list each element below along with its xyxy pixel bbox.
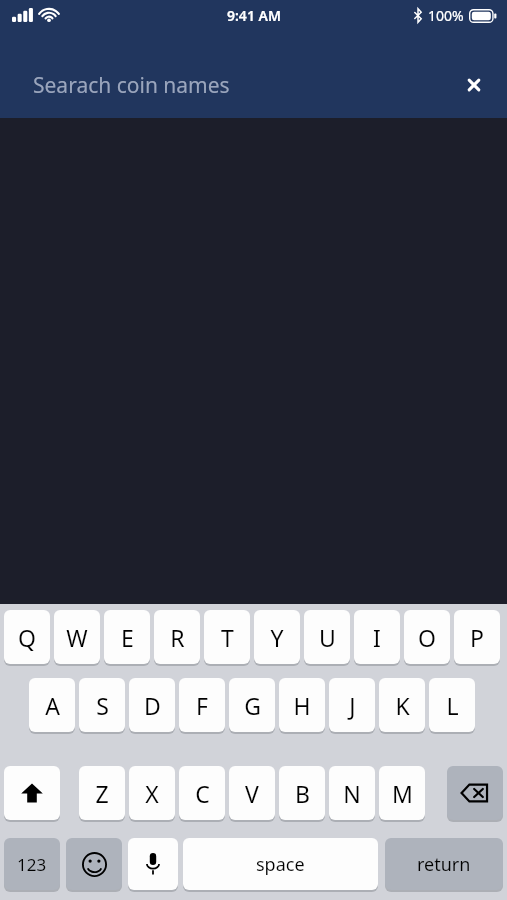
staticText: V: [245, 778, 259, 809]
button[interactable]: D: [129, 678, 175, 732]
staticText: N: [343, 778, 361, 809]
staticText: F: [196, 690, 208, 721]
button[interactable]: P: [454, 610, 500, 664]
button[interactable]: A: [29, 678, 75, 732]
staticText: 123: [17, 853, 47, 876]
staticText: space: [256, 852, 305, 877]
staticText: K: [395, 690, 410, 721]
staticText: 100%: [428, 6, 464, 25]
button[interactable]: X: [129, 766, 175, 820]
button[interactable]: N: [329, 766, 375, 820]
staticText: O: [418, 622, 436, 653]
staticText: return: [417, 852, 471, 877]
button[interactable]: L: [429, 678, 475, 732]
button[interactable]: Y: [254, 610, 300, 664]
button[interactable]: U: [304, 610, 350, 664]
button[interactable]: Searach coin names: [0, 56, 507, 114]
staticText: 9:41 AM: [227, 6, 281, 25]
button[interactable]: Z: [79, 766, 125, 820]
staticText: G: [244, 690, 261, 721]
staticText: Searach coin names: [33, 71, 230, 100]
staticText: X: [145, 778, 159, 809]
button[interactable]: H: [279, 678, 325, 732]
staticText: E: [121, 622, 134, 653]
staticText: C: [195, 778, 210, 809]
button[interactable]: M: [379, 766, 425, 820]
button[interactable]: J: [329, 678, 375, 732]
button[interactable]: space: [183, 838, 378, 890]
staticText: W: [66, 622, 88, 653]
staticText: R: [170, 622, 185, 653]
staticText: I: [373, 622, 381, 653]
button[interactable]: V: [229, 766, 275, 820]
button[interactable]: E: [104, 610, 150, 664]
button[interactable]: C: [179, 766, 225, 820]
staticText: H: [293, 690, 311, 721]
button[interactable]: B: [279, 766, 325, 820]
staticText: Z: [95, 778, 109, 809]
button[interactable]: G: [229, 678, 275, 732]
staticText: J: [349, 690, 356, 721]
staticText: U: [319, 622, 336, 653]
button[interactable]: W: [54, 610, 100, 664]
button[interactable]: R: [154, 610, 200, 664]
button[interactable]: F: [179, 678, 225, 732]
staticText: Q: [18, 622, 36, 653]
button[interactable]: O: [404, 610, 450, 664]
button[interactable]: Clear search: [452, 63, 496, 107]
staticText: P: [470, 622, 484, 653]
button[interactable]: T: [204, 610, 250, 664]
button[interactable]: Emoji: [66, 838, 122, 890]
staticText: S: [96, 690, 109, 721]
staticText: Y: [270, 622, 284, 653]
staticText: B: [295, 778, 310, 809]
button[interactable]: Q: [4, 610, 50, 664]
staticText: L: [446, 690, 459, 721]
staticText: D: [144, 690, 161, 721]
button[interactable]: I: [354, 610, 400, 664]
staticText: A: [45, 690, 60, 721]
button[interactable]: 123: [4, 838, 60, 890]
button[interactable]: K: [379, 678, 425, 732]
button[interactable]: S: [79, 678, 125, 732]
button[interactable]: return: [385, 838, 503, 890]
button[interactable]: Dictate: [128, 838, 178, 890]
button[interactable]: Shift: [4, 766, 60, 820]
staticText: T: [221, 622, 234, 653]
button[interactable]: Backspace: [447, 766, 503, 820]
staticText: M: [392, 778, 413, 809]
